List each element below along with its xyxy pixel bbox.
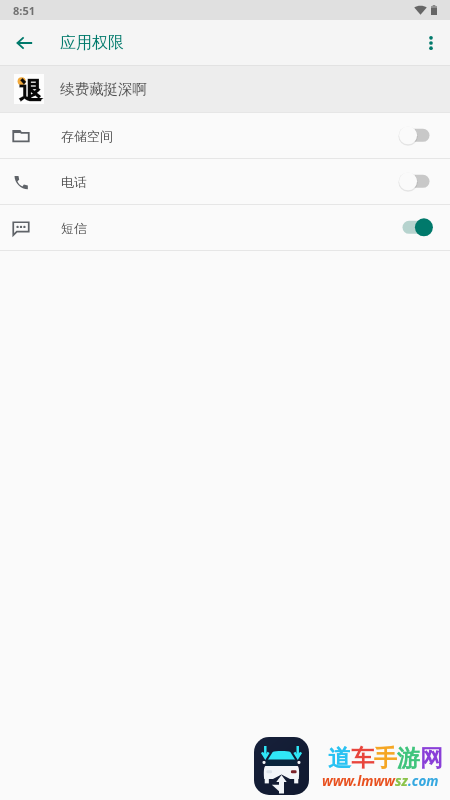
staticText: .com: [408, 772, 439, 790]
button[interactable]: Back: [7, 26, 41, 60]
staticText: 应用权限: [60, 33, 124, 53]
staticText: 短信: [61, 220, 87, 236]
button[interactable]: 电话: [0, 159, 450, 204]
button[interactable]: 存储空间: [0, 113, 450, 158]
staticText: 网: [420, 744, 443, 773]
staticText: 电话: [61, 174, 87, 190]
staticText: 车: [351, 744, 374, 773]
staticText: 8:51: [13, 3, 35, 18]
staticText: 退: [19, 77, 42, 106]
staticText: 续费藏挺深啊: [60, 80, 147, 98]
staticText: 道: [328, 744, 351, 773]
staticText: 手: [374, 744, 397, 773]
button[interactable]: 短信: [0, 205, 450, 250]
staticText: 存储空间: [61, 128, 113, 144]
staticText: 游: [397, 744, 420, 773]
staticText: www.lmww: [322, 772, 395, 790]
button[interactable]: More options: [414, 26, 448, 60]
staticText: sz: [395, 772, 408, 790]
